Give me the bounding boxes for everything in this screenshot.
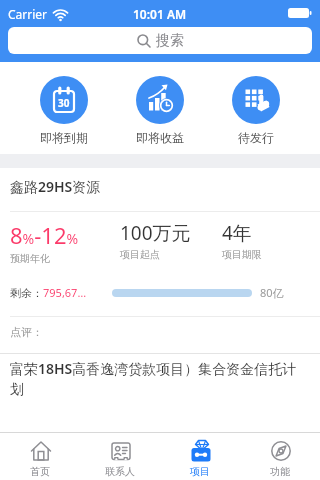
staticText: 待发行 [238, 130, 274, 145]
staticText: 鑫路29HS资源 [10, 177, 101, 196]
staticText: 即将到期 [40, 130, 88, 145]
button[interactable]: 即将收益 [112, 76, 208, 145]
staticText: 即将收益 [136, 130, 184, 145]
button[interactable]: 功能 [240, 433, 320, 480]
staticText: 4年 [222, 220, 252, 246]
staticText: 80亿 [260, 285, 284, 300]
staticText: 项目 [190, 465, 210, 478]
staticText: 30 [58, 96, 70, 110]
button[interactable]: 30 [16, 76, 112, 145]
staticText: 搜索 [156, 32, 184, 50]
staticText: 首页 [30, 465, 50, 478]
staticText: 剩余：795,67… [10, 285, 87, 300]
staticText: 项目起点 [120, 248, 160, 261]
button[interactable]: 待发行 [208, 76, 304, 145]
staticText: Carrier [8, 6, 48, 22]
button[interactable]: 鑫路29HS资源 [0, 168, 320, 353]
staticText: 预期年化 [10, 252, 50, 265]
staticText: 100万元 [120, 220, 191, 246]
staticText: 项目期限 [222, 248, 262, 261]
staticText: 8%-12% [10, 220, 79, 250]
staticText: 富荣18HS高香逸湾贷款项目）集合资金信托计划 [10, 359, 310, 398]
staticText: 功能 [270, 465, 290, 478]
button[interactable]: 项目 [160, 433, 240, 480]
button[interactable]: 首页 [0, 433, 80, 480]
staticText: 10:01 AM [133, 6, 187, 22]
staticText: 点评： [10, 325, 43, 339]
staticText: 联系人 [105, 465, 135, 478]
button[interactable]: 搜索 [8, 27, 312, 54]
button[interactable]: 富荣18HS高香逸湾贷款项目）集合资金信托计划 [0, 354, 320, 398]
button[interactable]: 联系人 [80, 433, 160, 480]
